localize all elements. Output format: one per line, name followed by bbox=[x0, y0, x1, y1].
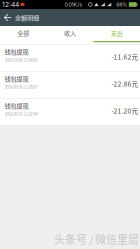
staticText: 全部 bbox=[17, 28, 29, 37]
staticText: 余额明细 bbox=[15, 13, 39, 22]
staticText: -21.20元 bbox=[111, 106, 138, 115]
staticText: 钱包提现 bbox=[4, 74, 28, 83]
button[interactable]: 钱包提现 bbox=[0, 45, 140, 71]
button[interactable]: 支出 bbox=[93, 26, 140, 44]
button[interactable]: 全部 bbox=[0, 26, 47, 44]
button[interactable]: Back bbox=[0, 9, 15, 25]
staticText: 收入 bbox=[64, 28, 76, 37]
staticText: 0.01K/s bbox=[64, 1, 82, 8]
button[interactable]: 钱包提现 bbox=[0, 99, 140, 125]
staticText: -11.62元 bbox=[111, 52, 138, 61]
staticText: 钱包提现 bbox=[4, 101, 28, 110]
staticText: 2016-10-06 15:04:05 bbox=[4, 57, 37, 63]
button[interactable]: 钱包提现 bbox=[0, 72, 140, 98]
staticText: 头条号 / 微信里层 bbox=[54, 231, 139, 247]
staticText: 68% bbox=[116, 1, 127, 8]
staticText: 钱包提现 bbox=[4, 47, 28, 56]
staticText: 2016-09-26 17:28:07 bbox=[4, 84, 37, 90]
staticText: -22.86元 bbox=[111, 79, 138, 88]
staticText: 2016-09-25 11:02:04 bbox=[4, 111, 37, 117]
button[interactable]: 收入 bbox=[47, 26, 93, 44]
staticText: 12:44 bbox=[2, 0, 19, 9]
staticText: 支出 bbox=[111, 28, 123, 37]
